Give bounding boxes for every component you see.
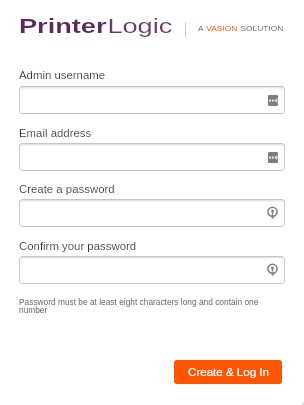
other: Autofill suggestions xyxy=(268,95,278,106)
button[interactable]: Autofill suggestions xyxy=(19,143,285,171)
staticText: Admin username xyxy=(19,69,106,82)
staticText: Printer xyxy=(19,14,107,37)
button[interactable]: Autofill suggestions xyxy=(19,86,285,114)
staticText: VASION xyxy=(206,25,238,33)
button[interactable]: Show password xyxy=(19,256,285,284)
staticText: Password must be at least eight characte… xyxy=(19,297,271,315)
other: Autofill suggestions xyxy=(268,152,278,163)
staticText: A xyxy=(198,25,206,33)
button[interactable]: Show password xyxy=(19,199,285,227)
staticText: Email address xyxy=(19,127,92,140)
staticText: Create a password xyxy=(19,183,115,196)
other: Show password xyxy=(267,264,278,276)
other: Show password xyxy=(267,207,278,219)
staticText: Logic xyxy=(107,14,172,37)
button[interactable]: Create & Log In xyxy=(174,360,282,384)
staticText: Create & Log In xyxy=(188,366,269,379)
staticText: Confirm your password xyxy=(19,240,137,253)
staticText: SOLUTION xyxy=(238,25,284,33)
